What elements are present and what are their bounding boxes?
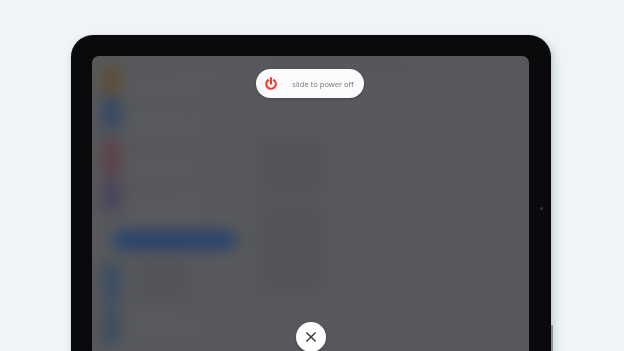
button[interactable]: Close [296, 322, 326, 351]
staticText: slide to power off [269, 79, 364, 89]
button[interactable]: slide to power off [256, 69, 364, 98]
